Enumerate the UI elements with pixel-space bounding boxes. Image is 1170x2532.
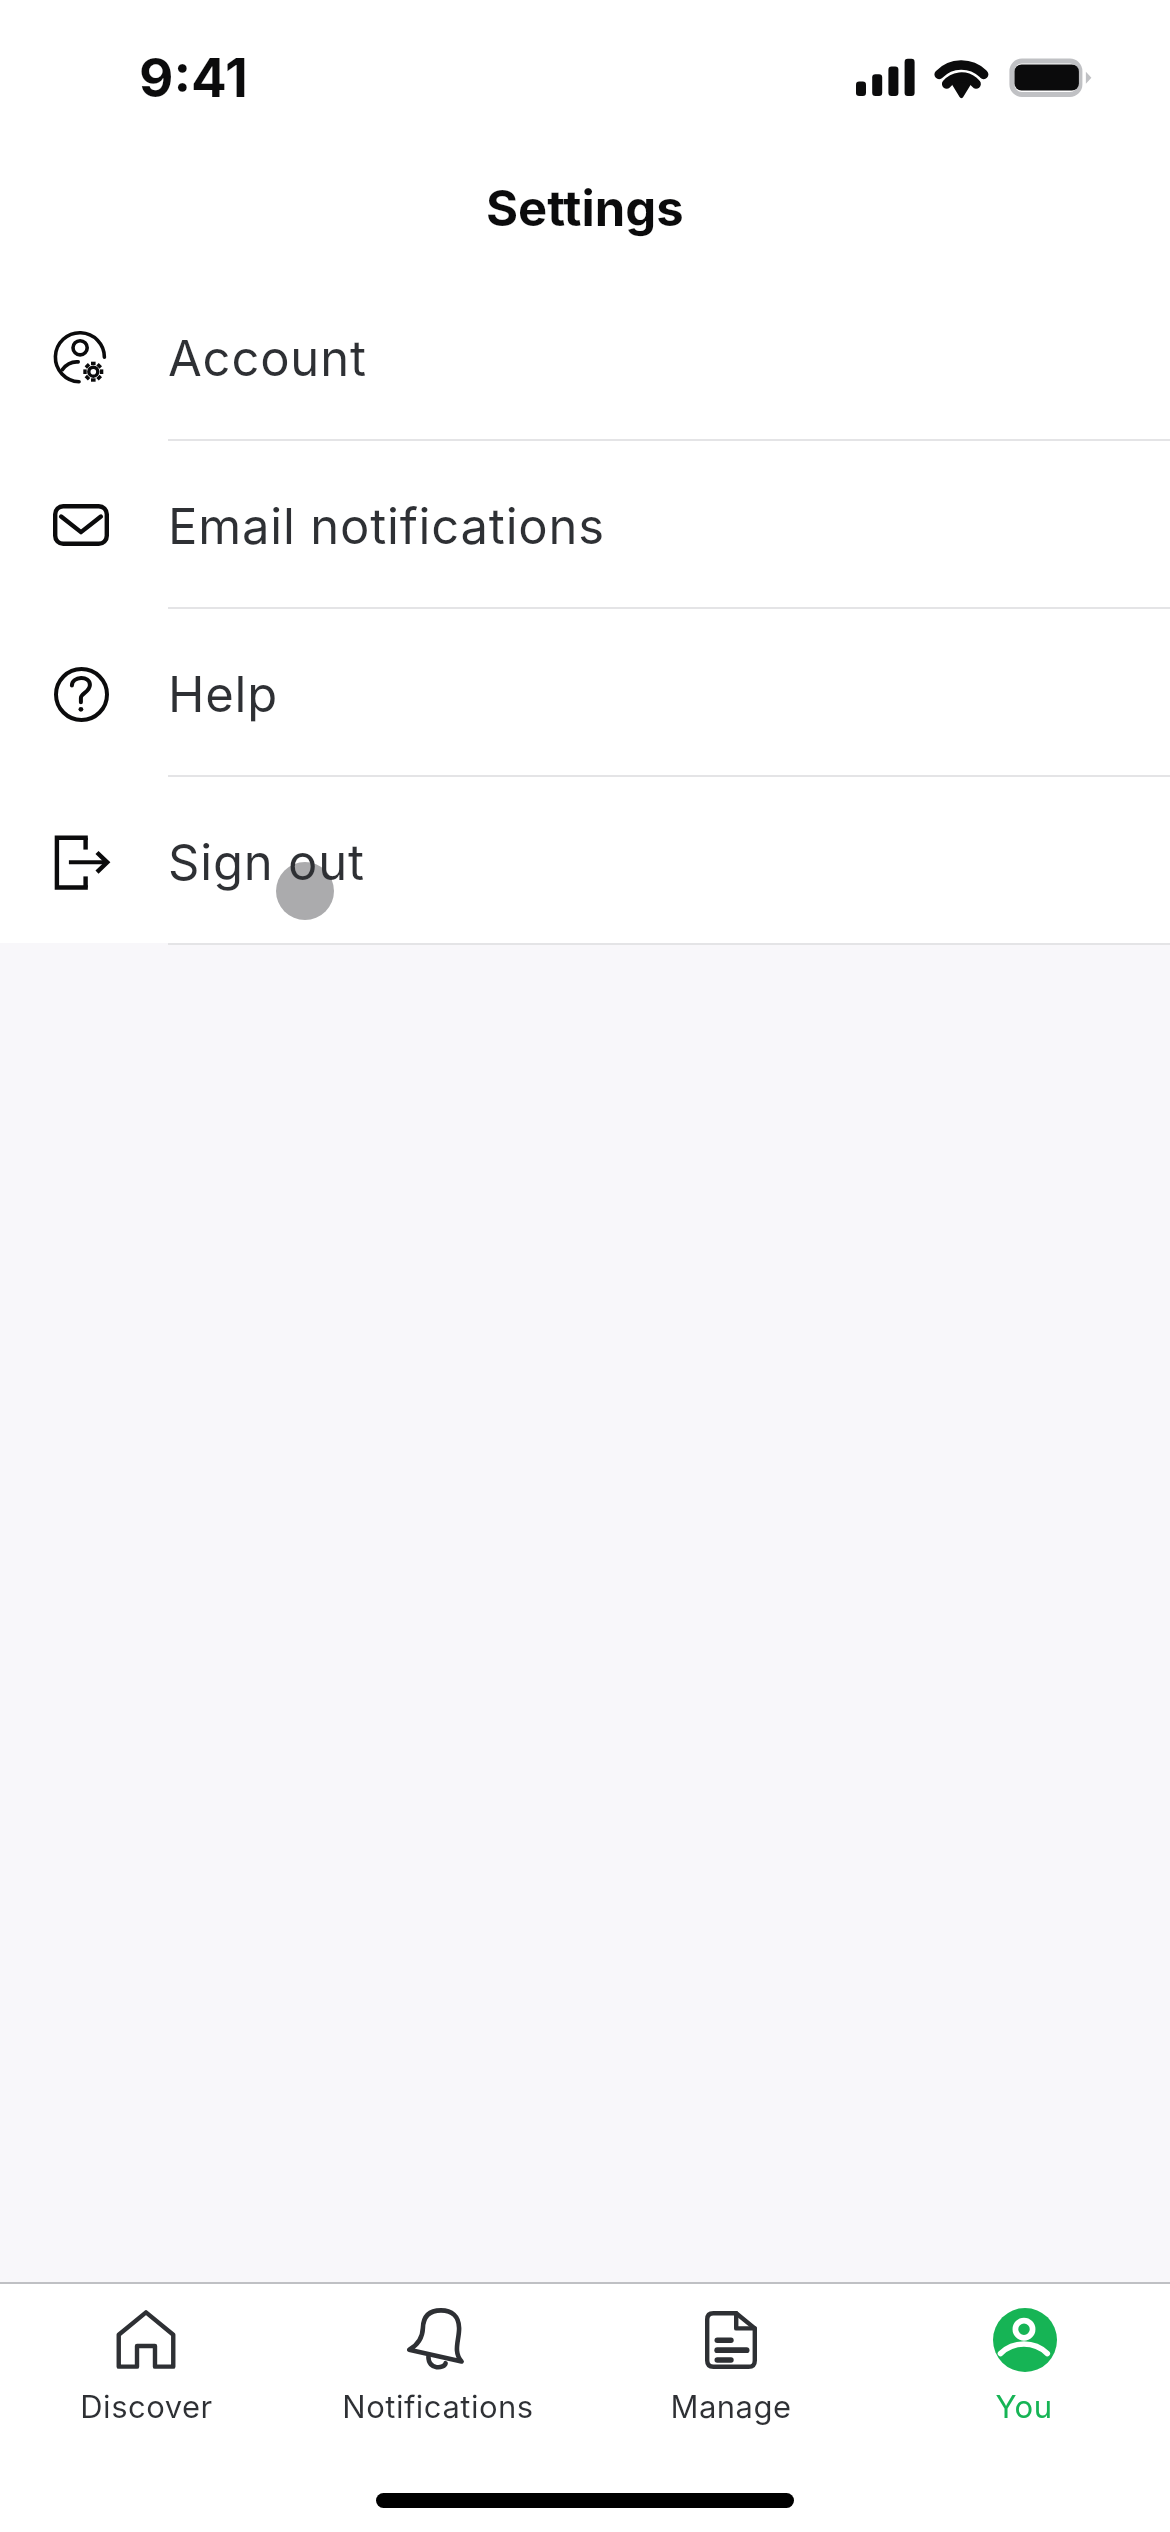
staticText: Sign out: [168, 833, 365, 892]
button[interactable]: Help: [0, 607, 1170, 775]
staticText: 9:41: [139, 46, 248, 110]
staticText: Email notifications: [168, 497, 605, 556]
button[interactable]: You: [877, 2284, 1170, 2454]
button[interactable]: Sign out: [0, 775, 1170, 943]
staticText: Settings: [486, 179, 684, 238]
button[interactable]: Account: [0, 271, 1170, 439]
staticText: Manage: [670, 2388, 792, 2426]
staticText: Notifications: [342, 2388, 534, 2426]
button[interactable]: Discover: [0, 2284, 292, 2454]
other: Manage: [705, 2311, 757, 2369]
staticText: Discover: [80, 2388, 213, 2426]
other: Notifications: [406, 2308, 464, 2372]
button[interactable]: Manage: [584, 2284, 877, 2454]
other: Discover: [117, 2310, 175, 2369]
staticText: You: [995, 2388, 1053, 2426]
other: You: [993, 2308, 1057, 2372]
staticText: Account: [168, 329, 367, 388]
button[interactable]: Notifications: [292, 2284, 584, 2454]
staticText: Help: [168, 665, 279, 724]
button[interactable]: Email notifications: [0, 439, 1170, 607]
